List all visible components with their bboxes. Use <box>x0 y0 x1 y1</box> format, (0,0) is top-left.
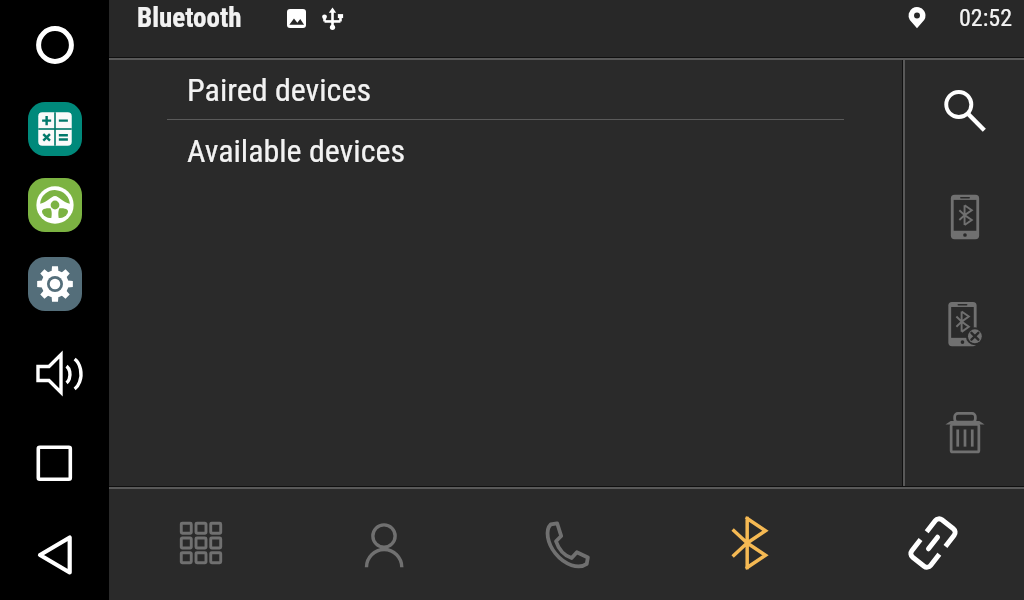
staticText: 02:52 <box>959 4 1012 32</box>
button[interactable]: Connections <box>841 489 1024 597</box>
button[interactable]: Location <box>900 1 934 35</box>
button[interactable]: Recents <box>27 436 83 492</box>
button[interactable]: USB <box>315 1 349 35</box>
button[interactable]: Available devices <box>109 120 902 182</box>
button[interactable]: Volume <box>27 345 83 401</box>
button[interactable]: Home <box>27 17 83 73</box>
button[interactable]: Contacts <box>292 489 475 597</box>
button[interactable]: Paired devices <box>109 60 902 119</box>
staticText: Bluetooth <box>137 2 242 34</box>
button[interactable]: Dialer <box>475 489 658 597</box>
button[interactable]: Media <box>279 1 313 35</box>
staticText: Paired devices <box>187 71 371 109</box>
button[interactable]: App <box>28 102 82 156</box>
button[interactable]: Apps <box>109 489 292 597</box>
button[interactable]: Delete <box>934 402 996 464</box>
button[interactable]: Unpair phone <box>934 294 996 356</box>
button[interactable]: App <box>28 257 82 311</box>
button[interactable]: Bluetooth <box>658 489 841 597</box>
staticText: Available devices <box>187 132 406 170</box>
button[interactable]: Paired phone <box>934 186 996 248</box>
button[interactable]: Search <box>934 79 996 141</box>
button[interactable]: App <box>28 178 82 232</box>
button[interactable]: Back <box>27 527 83 583</box>
